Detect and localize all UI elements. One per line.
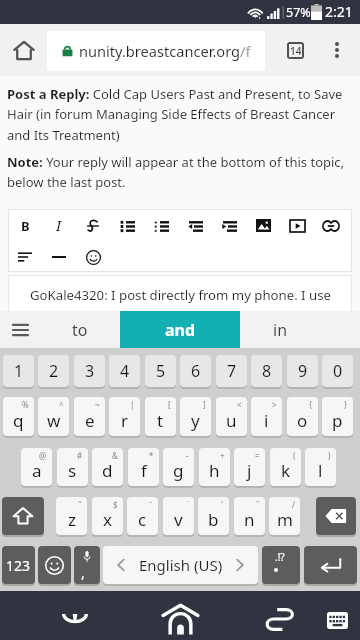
button[interactable]: 7 (216, 355, 247, 387)
button[interactable]: & (92, 448, 123, 486)
staticText: [ (168, 399, 171, 410)
button[interactable]: + (199, 448, 230, 486)
button[interactable]: hr (42, 242, 76, 272)
button[interactable]: 3 (74, 355, 105, 387)
staticText: ˝ (256, 499, 260, 510)
button[interactable]: and (120, 311, 240, 348)
button[interactable]: Tabs (278, 33, 312, 67)
staticText: o (297, 409, 308, 432)
button[interactable]: ol (144, 209, 178, 242)
button[interactable]: Voice input and comma (74, 546, 100, 584)
staticText: - (186, 450, 189, 461)
button[interactable]: indent (212, 209, 246, 242)
staticText: r (121, 409, 129, 432)
button[interactable]: Emoji (38, 546, 71, 584)
button[interactable]: link (314, 209, 348, 242)
button[interactable]: ˜ (56, 497, 87, 535)
button[interactable]: ul (110, 209, 144, 242)
button[interactable]: * (128, 448, 159, 486)
button[interactable]: image (246, 209, 280, 242)
staticText: 2:21 (325, 2, 353, 21)
staticText: h (209, 459, 220, 482)
staticText: + (220, 450, 225, 461)
staticText: k (281, 459, 291, 482)
button[interactable]: ˙ (163, 497, 194, 535)
button[interactable]: ˘ (127, 497, 158, 535)
button[interactable]: ) (305, 448, 336, 486)
button[interactable]: English (US) (103, 546, 258, 584)
button[interactable]: Home (160, 597, 200, 637)
button[interactable]: Hide keyboard (317, 598, 357, 638)
button[interactable]: nunity.breastcancer.org/f (47, 31, 265, 71)
button[interactable]: / (269, 497, 300, 535)
button[interactable]: video (280, 209, 314, 242)
staticText: $ (113, 499, 118, 510)
button[interactable]: Punctuation (262, 546, 300, 584)
button[interactable]: [ (145, 397, 176, 436)
button[interactable]: { (287, 397, 318, 436)
staticText: i (264, 409, 269, 432)
button[interactable]: 5 (145, 355, 176, 387)
staticText: Note: Your reply will appear at the bott… (7, 153, 354, 191)
button[interactable]: Back (55, 596, 95, 636)
button[interactable]: Recent apps (259, 597, 299, 637)
button[interactable]: 6 (180, 355, 211, 387)
button[interactable]: Home (8, 34, 40, 66)
staticText: I (56, 216, 62, 235)
button[interactable]: > (251, 397, 282, 436)
button[interactable]: | (109, 397, 140, 436)
button[interactable]: More options (320, 33, 354, 67)
button[interactable]: ˝ (234, 497, 265, 535)
button[interactable]: < (216, 397, 247, 436)
button[interactable]: 9 (287, 355, 318, 387)
button[interactable]: italic (42, 209, 76, 242)
staticText: ˙ (187, 499, 189, 510)
button[interactable]: @ (21, 448, 52, 486)
button[interactable]: Symbols (2, 546, 35, 584)
staticText: 5 (156, 360, 166, 382)
staticText: 4 (120, 360, 130, 382)
staticText: u (226, 409, 237, 432)
staticText: 8 (262, 360, 272, 382)
button[interactable]: 0 (322, 355, 353, 387)
button[interactable]: 2 (38, 355, 69, 387)
button[interactable]: in (240, 311, 320, 348)
button[interactable]: outdent (178, 209, 212, 242)
staticText: ^ (59, 399, 64, 410)
button[interactable]: ^ (38, 397, 69, 436)
button[interactable]: Shift (2, 497, 44, 535)
staticText: 3 (85, 360, 95, 382)
button[interactable]: Enter (304, 546, 357, 584)
button[interactable]: ] (180, 397, 211, 436)
staticText: | (130, 399, 135, 410)
staticText: { (309, 399, 313, 410)
staticText: 7 (227, 360, 237, 382)
staticText: and (165, 319, 196, 341)
button[interactable]: emoji (76, 242, 110, 272)
button[interactable]: ˚ (198, 497, 229, 535)
staticText: p (332, 409, 343, 432)
button[interactable]: align (8, 242, 42, 272)
button[interactable]: 8 (251, 355, 282, 387)
staticText: in (273, 319, 288, 341)
staticText: g (173, 459, 184, 482)
button[interactable]: 4 (109, 355, 140, 387)
staticText: q (13, 409, 24, 432)
button[interactable]: = (234, 448, 265, 486)
button[interactable]: Keyboard options (0, 311, 40, 348)
button[interactable]: - (163, 448, 194, 486)
button[interactable]: # (57, 448, 88, 486)
button[interactable]: % (3, 397, 34, 436)
button[interactable]: } (322, 397, 353, 436)
button[interactable]: bold (8, 209, 42, 242)
button[interactable]: ( (270, 448, 301, 486)
button[interactable]: $ (92, 497, 123, 535)
button[interactable]: 1 (3, 355, 34, 387)
staticText: 2 (49, 360, 59, 382)
button[interactable]: ~ (74, 397, 105, 436)
staticText: = (255, 450, 260, 461)
button[interactable]: strike (76, 209, 110, 242)
button[interactable]: Backspace (316, 497, 356, 535)
staticText: z (68, 508, 76, 531)
button[interactable]: to (40, 311, 120, 348)
